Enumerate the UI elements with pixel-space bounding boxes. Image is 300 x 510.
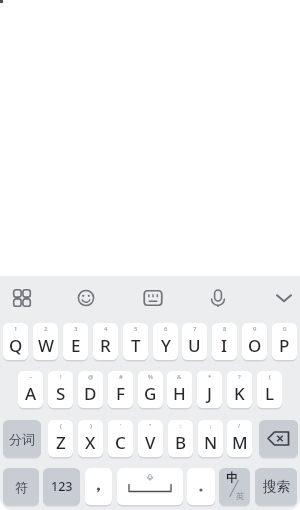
staticText: T bbox=[131, 334, 141, 357]
staticText: O bbox=[248, 334, 262, 357]
staticText: F bbox=[116, 382, 125, 405]
staticText: @ bbox=[88, 373, 94, 381]
staticText: 2 bbox=[44, 325, 48, 333]
button[interactable]: 3 bbox=[63, 323, 88, 360]
button[interactable]: 分词 bbox=[3, 420, 41, 457]
staticText: ) bbox=[90, 422, 92, 430]
staticText: ' bbox=[120, 422, 122, 430]
staticText: 中 bbox=[226, 470, 238, 485]
staticText: I bbox=[221, 334, 228, 357]
button[interactable]: 2 bbox=[33, 323, 58, 360]
staticText: 5 bbox=[134, 325, 138, 333]
button[interactable] bbox=[187, 468, 215, 505]
staticText: 搜索 bbox=[263, 478, 290, 495]
button[interactable] bbox=[76, 288, 96, 308]
button[interactable]: ~ bbox=[18, 371, 43, 408]
button[interactable]: 6 bbox=[153, 323, 178, 360]
staticText: % bbox=[148, 373, 153, 381]
staticText: 123 bbox=[51, 478, 73, 495]
staticText: 4 bbox=[104, 325, 108, 333]
button[interactable]: @ bbox=[78, 371, 103, 408]
button[interactable] bbox=[117, 468, 183, 505]
button[interactable] bbox=[85, 468, 112, 505]
staticText: Y bbox=[161, 334, 171, 357]
staticText: J bbox=[207, 382, 212, 405]
button[interactable]: ? bbox=[227, 371, 252, 408]
staticText: # bbox=[119, 373, 123, 381]
staticText: 7 bbox=[193, 325, 197, 333]
staticText: C bbox=[115, 431, 126, 454]
button[interactable]: 中 bbox=[219, 468, 250, 505]
button[interactable]: 123 bbox=[43, 468, 80, 505]
button[interactable]: / bbox=[227, 420, 252, 457]
staticText: X bbox=[85, 431, 96, 454]
staticText: 分词 bbox=[9, 431, 35, 447]
button[interactable]: # bbox=[108, 371, 133, 408]
staticText: B bbox=[175, 431, 187, 454]
button[interactable]: 符 bbox=[3, 468, 39, 505]
button[interactable]: ( bbox=[48, 420, 73, 457]
staticText: K bbox=[234, 382, 245, 405]
staticText: V bbox=[145, 431, 156, 454]
button[interactable]: " bbox=[138, 420, 163, 457]
staticText: P bbox=[279, 334, 290, 357]
staticText: D bbox=[84, 382, 97, 405]
staticText: " bbox=[149, 422, 152, 430]
button[interactable]: 7 bbox=[182, 323, 207, 360]
staticText: 9 bbox=[253, 325, 257, 333]
button[interactable]: ) bbox=[78, 420, 103, 457]
staticText: & bbox=[177, 373, 182, 381]
staticText: 符 bbox=[15, 479, 28, 495]
button[interactable] bbox=[274, 288, 294, 308]
staticText: * bbox=[208, 373, 212, 381]
button[interactable]: : bbox=[168, 420, 193, 457]
staticText: U bbox=[188, 334, 201, 357]
staticText: M bbox=[232, 431, 248, 454]
button[interactable]: ' bbox=[108, 420, 133, 457]
staticText: Z bbox=[56, 431, 66, 454]
button[interactable]: & bbox=[167, 371, 192, 408]
button[interactable]: 1 bbox=[3, 323, 28, 360]
button[interactable]: ! bbox=[48, 371, 73, 408]
staticText: R bbox=[100, 334, 111, 357]
staticText: 6 bbox=[164, 325, 168, 333]
staticText: : bbox=[180, 422, 182, 430]
button[interactable]: 搜索 bbox=[255, 468, 297, 505]
staticText: E bbox=[71, 334, 81, 357]
staticText: S bbox=[56, 382, 66, 405]
button[interactable]: 9 bbox=[242, 323, 267, 360]
button[interactable] bbox=[142, 287, 164, 309]
button[interactable]: 8 bbox=[212, 323, 237, 360]
button[interactable]: ( bbox=[257, 371, 282, 408]
staticText: 英 bbox=[236, 491, 245, 502]
staticText: / bbox=[238, 422, 241, 430]
button[interactable]: 5 bbox=[123, 323, 148, 360]
button[interactable]: % bbox=[138, 371, 163, 408]
button[interactable]: ; bbox=[198, 420, 223, 457]
staticText: ~ bbox=[29, 373, 33, 381]
staticText: G bbox=[144, 382, 157, 405]
staticText: Q bbox=[9, 334, 23, 357]
button[interactable] bbox=[259, 420, 298, 457]
staticText: W bbox=[38, 334, 54, 357]
button[interactable]: 4 bbox=[93, 323, 118, 360]
staticText: N bbox=[204, 431, 218, 454]
staticText: ( bbox=[269, 373, 271, 381]
staticText: H bbox=[173, 382, 186, 405]
button[interactable]: * bbox=[197, 371, 222, 408]
staticText: A bbox=[25, 382, 37, 405]
staticText: L bbox=[265, 382, 275, 405]
staticText: 3 bbox=[74, 325, 78, 333]
button[interactable] bbox=[207, 287, 229, 309]
staticText: ( bbox=[60, 422, 62, 430]
button[interactable]: 0 bbox=[272, 323, 297, 360]
button[interactable] bbox=[12, 288, 32, 308]
staticText: ? bbox=[238, 373, 241, 381]
staticText: ; bbox=[210, 422, 212, 430]
staticText: 0 bbox=[283, 325, 287, 333]
staticText: ! bbox=[60, 373, 62, 381]
staticText: 8 bbox=[223, 325, 227, 333]
staticText: 1 bbox=[14, 325, 18, 333]
